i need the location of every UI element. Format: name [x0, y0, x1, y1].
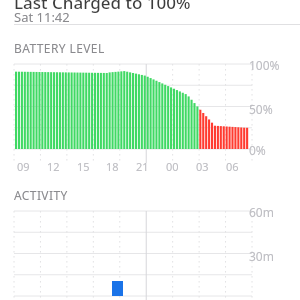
staticText: 50% — [249, 101, 273, 117]
staticText: 18 — [106, 159, 119, 174]
staticText: 60m — [249, 204, 274, 220]
button[interactable]: 100% — [0, 56, 300, 181]
button[interactable]: 60m — [0, 203, 300, 293]
staticText: 0% — [249, 142, 266, 158]
staticText: 03 — [196, 159, 209, 174]
staticText: Last Charged to 100% — [14, 0, 191, 14]
button[interactable]: Last Charged to 100% — [0, 0, 300, 300]
staticText: 06 — [226, 159, 239, 174]
staticText: 00 — [166, 159, 179, 174]
staticText: 30m — [249, 248, 274, 264]
staticText: 09 — [17, 159, 30, 174]
staticText: ACTIVITY — [14, 187, 68, 203]
staticText: 15 — [77, 159, 90, 174]
staticText: 21 — [136, 159, 149, 174]
staticText: Sat 11:42 — [14, 8, 70, 26]
staticText: 100% — [249, 57, 280, 73]
staticText: BATTERY LEVEL — [14, 40, 105, 56]
staticText: 12 — [47, 159, 60, 174]
